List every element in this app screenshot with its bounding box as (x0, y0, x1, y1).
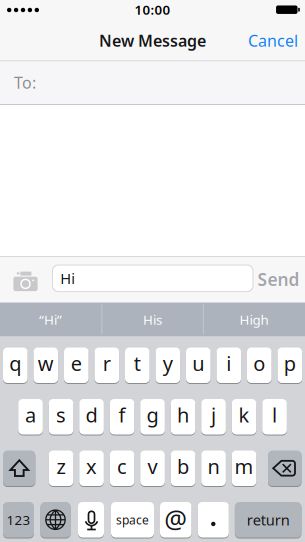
button[interactable]: j (201, 399, 226, 434)
button[interactable]: k (232, 399, 256, 434)
button[interactable]: Delete (268, 450, 301, 486)
staticText: h (177, 401, 189, 428)
button[interactable]: t (125, 347, 150, 383)
staticText: x (86, 453, 97, 480)
button[interactable]: m (232, 450, 256, 486)
staticText: 10:00 (134, 1, 170, 18)
staticText: o (253, 350, 265, 377)
staticText: z (56, 453, 65, 480)
staticText: b (177, 453, 189, 480)
staticText: “Hi” (39, 311, 62, 328)
staticText: Hi (60, 269, 75, 288)
staticText: To: (14, 72, 36, 93)
button[interactable]: d (79, 399, 104, 434)
button[interactable]: l (262, 399, 287, 434)
button[interactable]: Shift (3, 450, 35, 486)
staticText: q (9, 350, 21, 377)
staticText: j (211, 401, 216, 428)
staticText: Send (257, 268, 299, 291)
button[interactable]: v (140, 450, 165, 486)
staticText: High (239, 311, 268, 328)
staticText: k (239, 401, 250, 428)
button[interactable]: s (49, 399, 73, 434)
staticText: g (147, 401, 159, 428)
button[interactable]: u (186, 347, 211, 383)
button[interactable]: h (171, 399, 195, 434)
button[interactable]: n (201, 450, 226, 486)
staticText: s (56, 401, 66, 428)
staticText: v (148, 453, 158, 480)
button[interactable]: a (18, 399, 43, 434)
button[interactable]: z (49, 450, 73, 486)
button[interactable]: His (104, 302, 200, 336)
staticText: New Message (99, 30, 206, 51)
button[interactable]: r (94, 347, 119, 383)
button[interactable]: Next keyboard (40, 502, 70, 537)
button[interactable]: Camera (8, 266, 42, 294)
staticText: n (208, 453, 220, 480)
staticText: m (235, 453, 254, 480)
button[interactable]: To: (14, 62, 305, 102)
button[interactable]: i (216, 347, 241, 383)
staticText: His (143, 311, 162, 328)
button[interactable]: b (171, 450, 195, 486)
button[interactable]: Message (52, 265, 253, 292)
button[interactable]: q (3, 347, 28, 383)
staticText: Cancel (248, 30, 298, 51)
button[interactable]: Cancel (241, 24, 305, 56)
button[interactable]: x (79, 450, 104, 486)
staticText: c (117, 453, 127, 480)
staticText: d (85, 401, 97, 428)
button[interactable]: w (33, 347, 58, 383)
staticText: i (226, 350, 231, 377)
button[interactable]: @ (160, 502, 191, 537)
button[interactable]: o (247, 347, 272, 383)
staticText: @ (164, 502, 187, 535)
staticText: return (247, 510, 290, 529)
button[interactable]: Period (198, 502, 229, 537)
staticText: space (116, 512, 149, 528)
button[interactable]: Dictate (78, 502, 104, 537)
button[interactable]: g (140, 399, 165, 434)
button[interactable]: 123 (3, 502, 34, 537)
staticText: t (134, 350, 141, 377)
staticText: w (38, 350, 54, 377)
staticText: y (163, 350, 173, 377)
button[interactable]: y (155, 347, 180, 383)
button[interactable]: c (110, 450, 134, 486)
staticText: u (192, 350, 204, 377)
staticText: r (103, 350, 111, 377)
button[interactable]: space (111, 502, 154, 537)
button[interactable]: “Hi” (2, 302, 98, 336)
button[interactable]: e (64, 347, 89, 383)
button[interactable]: Send (255, 263, 301, 295)
staticText: e (71, 350, 82, 377)
staticText: l (272, 401, 277, 428)
staticText: 123 (6, 511, 30, 529)
staticText: f (118, 401, 125, 428)
staticText: a (25, 401, 36, 428)
button[interactable]: return (235, 502, 301, 537)
staticText: p (284, 350, 296, 377)
button[interactable]: p (277, 347, 302, 383)
button[interactable]: f (110, 399, 134, 434)
button[interactable]: High (206, 302, 302, 336)
